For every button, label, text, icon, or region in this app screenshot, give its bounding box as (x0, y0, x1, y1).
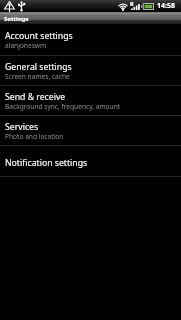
staticText: General settings (5, 61, 72, 73)
staticText: Notification settings (5, 157, 88, 169)
staticText: Photo and location (5, 132, 64, 141)
other: System update available (4, 1, 15, 11)
other: USB connected (18, 1, 25, 11)
staticText: 14:58 (157, 1, 175, 11)
button[interactable]: Send & receive (0, 86, 181, 116)
button[interactable]: Notification settings (0, 146, 181, 177)
staticText: Account settings (5, 30, 73, 42)
staticText: Background sync, frequency, amount (5, 102, 121, 111)
staticText: R (130, 0, 134, 8)
staticText: alanjoneswm (5, 41, 47, 50)
button[interactable]: Services (0, 116, 181, 146)
staticText: Services (5, 121, 39, 133)
staticText: Settings (4, 15, 29, 23)
staticText: Screen names, cache (5, 72, 70, 81)
staticText: Send & receive (5, 91, 66, 103)
button[interactable]: General settings (0, 56, 181, 86)
button[interactable]: Account settings (0, 24, 181, 56)
